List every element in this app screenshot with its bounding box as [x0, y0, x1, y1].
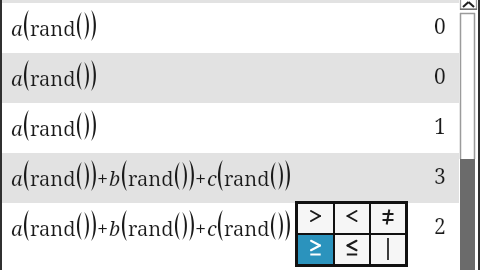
button[interactable]: a [0, 103, 459, 153]
staticText: c [207, 165, 217, 192]
button[interactable]: Scrollbar thumb [460, 13, 475, 159]
button[interactable]: a [0, 203, 459, 253]
staticText: + [195, 215, 207, 242]
button[interactable]: Less than or equal [335, 235, 369, 264]
staticText: rand [30, 215, 76, 242]
staticText: a [11, 15, 23, 42]
button[interactable]: Scroll up [460, 0, 477, 10]
staticText: b [109, 165, 121, 192]
staticText: 2 [434, 212, 446, 241]
button[interactable]: Less than [335, 204, 369, 233]
staticText: rand [30, 115, 76, 142]
staticText: + [195, 165, 207, 192]
button[interactable]: a [0, 153, 459, 203]
staticText: + [97, 215, 109, 242]
staticText: a [11, 65, 23, 92]
staticText: a [11, 165, 23, 192]
button[interactable]: Not equal [371, 204, 405, 233]
button[interactable]: Greater than [298, 204, 333, 233]
staticText: c [207, 215, 217, 242]
button[interactable]: a [0, 3, 459, 53]
button[interactable]: a [0, 53, 459, 103]
staticText: a [11, 115, 23, 142]
staticText: rand [30, 65, 76, 92]
staticText: 0 [434, 12, 446, 41]
staticText: rand [224, 165, 270, 192]
button[interactable]: Absolute value [371, 235, 405, 264]
button[interactable]: Greater than or equal [298, 235, 333, 264]
staticText: + [97, 165, 109, 192]
staticText: rand [30, 165, 76, 192]
staticText: b [109, 215, 121, 242]
staticText: a [11, 215, 23, 242]
staticText: 1 [434, 112, 446, 141]
staticText: rand [128, 165, 174, 192]
staticText: rand [128, 215, 174, 242]
staticText: 3 [434, 162, 446, 191]
staticText: rand [30, 15, 76, 42]
staticText: 0 [434, 62, 446, 91]
staticText: rand [224, 215, 270, 242]
